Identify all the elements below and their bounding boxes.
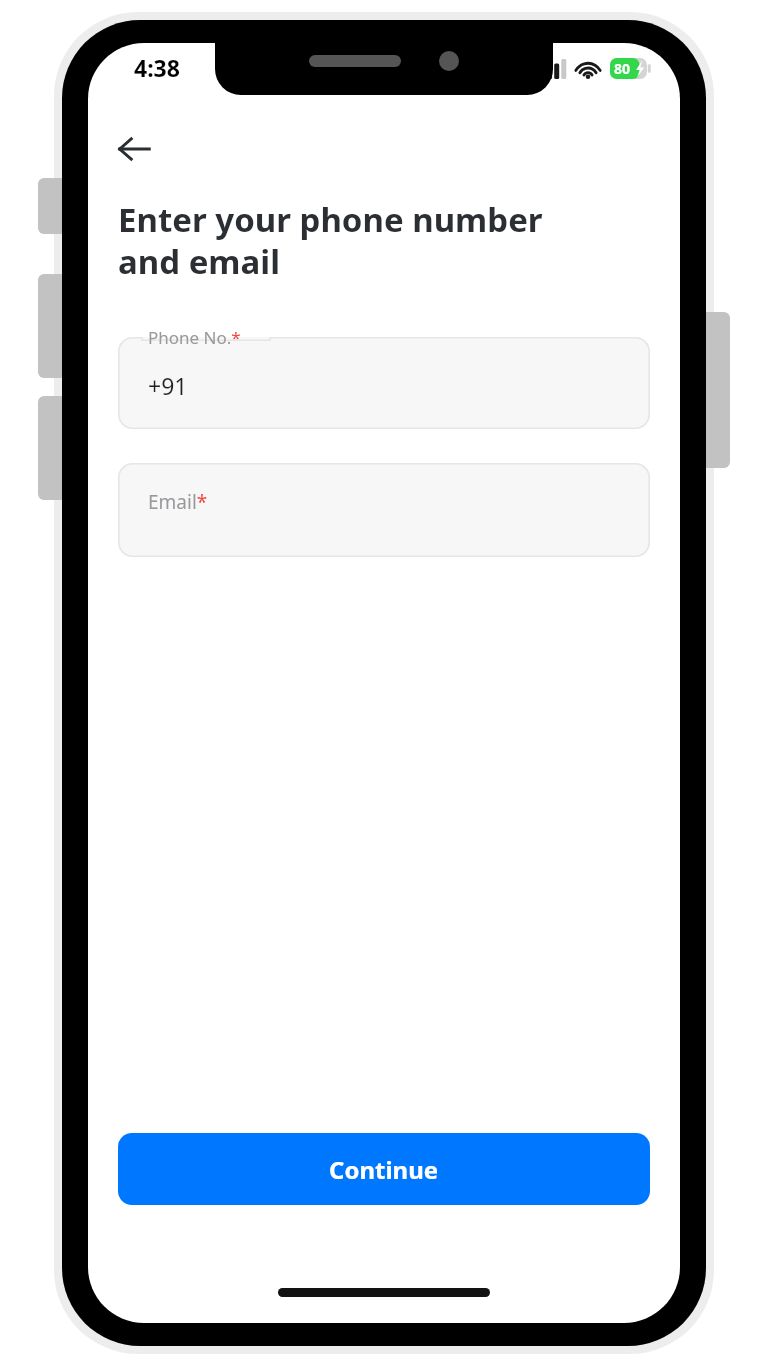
staticText: 80 xyxy=(614,59,631,78)
staticText: Phone No.* xyxy=(148,326,241,349)
button[interactable]: Continue xyxy=(118,1133,650,1205)
staticText: +91 xyxy=(148,370,188,401)
button[interactable]: Back xyxy=(108,123,160,175)
staticText: Email* xyxy=(148,489,208,515)
staticText: Continue xyxy=(329,1153,439,1186)
button[interactable]: Phone No.* xyxy=(118,326,650,429)
button[interactable]: Email* xyxy=(118,463,650,557)
staticText: Enter your phone number and email xyxy=(118,197,543,284)
staticText: 4:38 xyxy=(134,52,180,83)
